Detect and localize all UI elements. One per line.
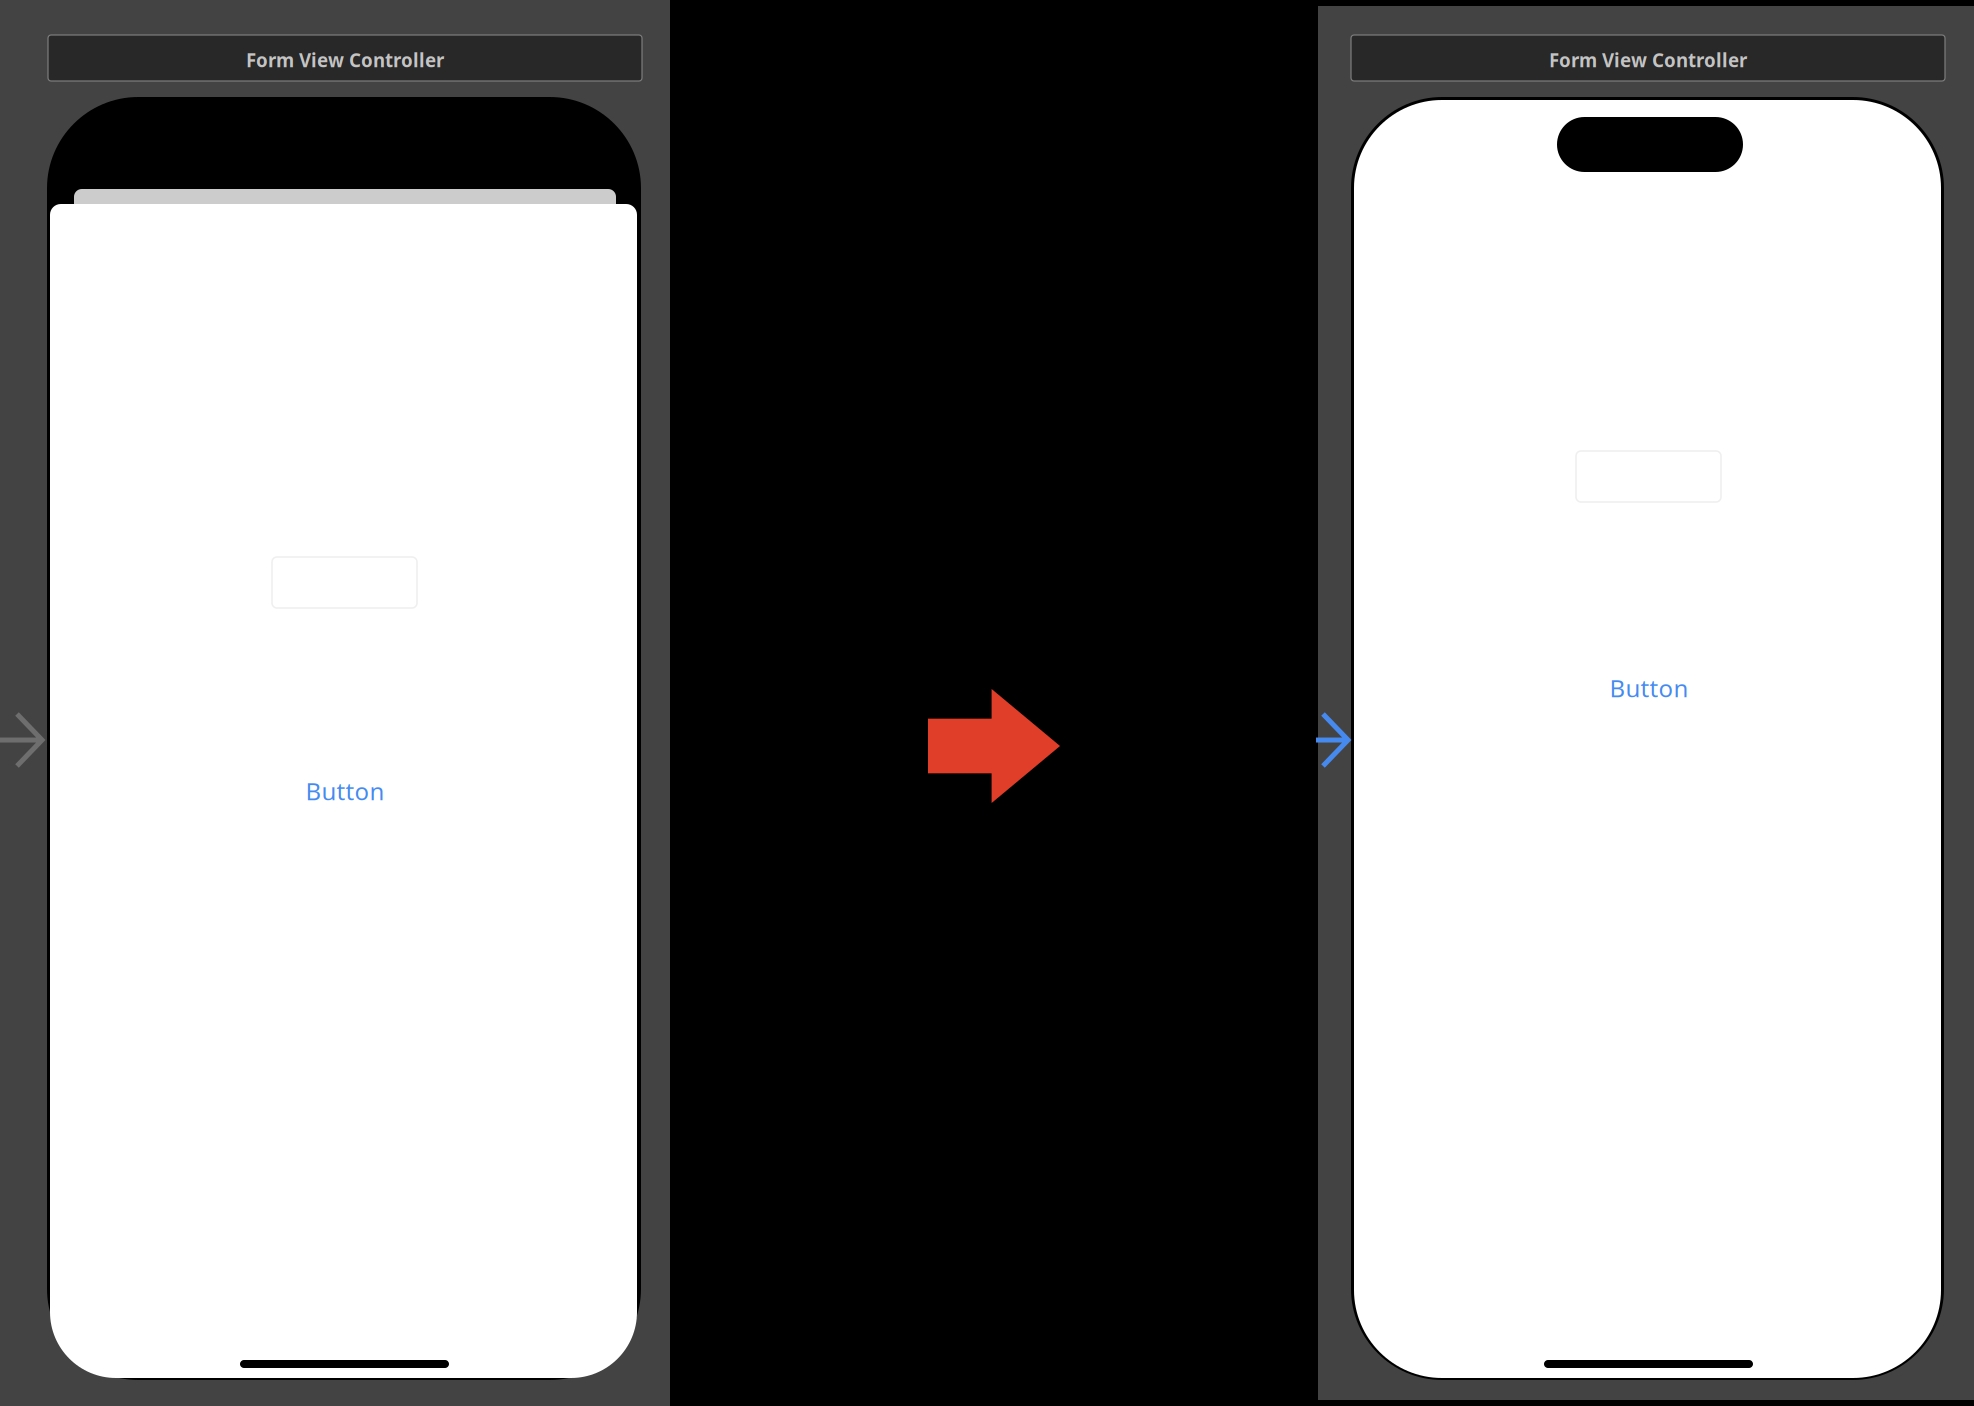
button[interactable]: Button <box>1604 671 1694 705</box>
staticText: Button <box>1609 672 1688 704</box>
staticText: Form View Controller <box>246 48 444 72</box>
button[interactable]: Form View Controller <box>48 35 642 81</box>
button[interactable]: Button <box>300 774 390 808</box>
button[interactable]: Storyboard entry point <box>0 714 43 766</box>
staticText: Button <box>305 775 384 807</box>
button[interactable]: Form View Controller <box>1351 35 1945 81</box>
staticText: Form View Controller <box>1549 48 1747 72</box>
button[interactable]: Relationship segue <box>1316 714 1349 766</box>
button[interactable]: Present modally segue <box>928 689 1060 803</box>
